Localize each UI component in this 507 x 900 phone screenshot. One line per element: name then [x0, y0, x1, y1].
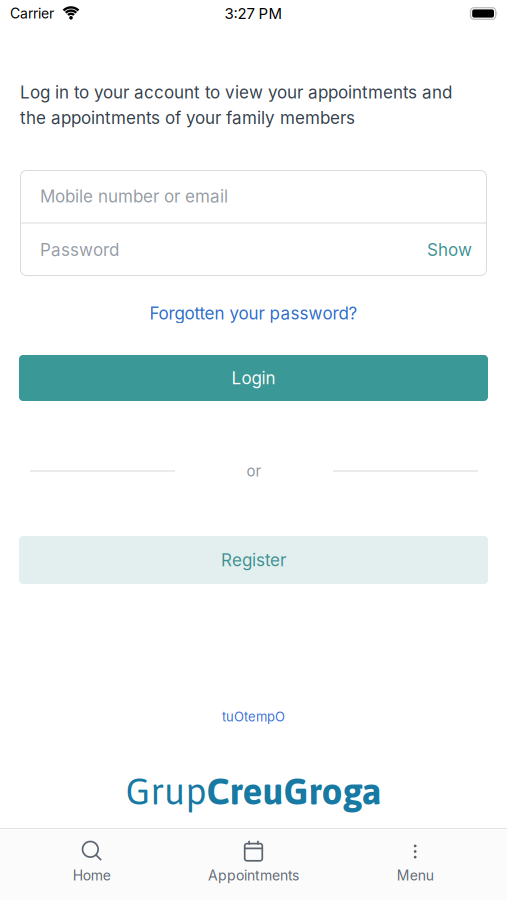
staticText: tuOtempO — [222, 709, 285, 725]
staticText: CreuGroga — [206, 770, 381, 812]
staticText: Home — [73, 867, 111, 884]
staticText: Carrier — [10, 5, 54, 22]
staticText: or — [246, 462, 261, 480]
button[interactable]: tuOtempO — [222, 709, 285, 725]
staticText: Forgotten your password? — [149, 303, 357, 324]
button[interactable]: Register — [19, 536, 488, 584]
button[interactable]: Mobile number or email — [20, 170, 487, 222]
staticText: Grup — [125, 770, 206, 812]
button[interactable]: Show — [427, 239, 472, 260]
staticText: Show — [427, 239, 472, 260]
button[interactable]: Login — [19, 355, 488, 401]
staticText: Login — [231, 368, 275, 388]
staticText: 3:27 PM — [224, 4, 282, 22]
button[interactable]: Home — [11, 840, 173, 884]
staticText: Log in to your account to view your appo… — [20, 82, 452, 128]
button[interactable]: Appointments — [173, 840, 334, 884]
staticText: Register — [221, 550, 286, 570]
staticText: Appointments — [208, 867, 299, 884]
staticText: Password — [40, 239, 119, 260]
staticText: Mobile number or email — [40, 186, 228, 207]
button[interactable]: Password — [20, 223, 487, 276]
button[interactable]: Forgotten your password? — [149, 303, 357, 324]
button[interactable]: Menu — [334, 840, 496, 884]
staticText: Menu — [397, 867, 434, 884]
